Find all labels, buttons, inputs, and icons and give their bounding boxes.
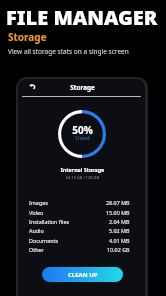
button[interactable]: Documents: [29, 237, 130, 246]
staticText: 10.02 GB: [107, 246, 130, 253]
staticText: 64.16 GB / 128 GB: [19, 175, 146, 180]
staticText: 5.02 MB: [109, 227, 130, 234]
staticText: 2.04 MB: [109, 218, 130, 225]
button[interactable]: Images: [29, 199, 130, 208]
staticText: 50%: [19, 123, 146, 137]
button[interactable]: CLEAN UP: [42, 267, 123, 282]
staticText: Storage: [19, 83, 146, 92]
staticText: Documents: [29, 237, 59, 244]
staticText: Video: [29, 209, 44, 216]
staticText: Audio: [29, 227, 44, 234]
staticText: 15.00 MB: [106, 209, 130, 216]
staticText: Installation files: [29, 218, 70, 225]
staticText: Storage: [8, 30, 47, 44]
staticText: 28.07 MB: [106, 199, 130, 206]
button[interactable]: Video: [29, 209, 130, 218]
staticText: View all storage stats on a single scree…: [8, 47, 129, 56]
staticText: Images: [29, 199, 48, 206]
staticText: 4.01 MB: [109, 237, 130, 244]
button[interactable]: Back: [25, 79, 39, 93]
staticText: Other: [29, 246, 44, 253]
staticText: Internal Storage: [19, 166, 146, 173]
staticText: Used: [19, 134, 146, 142]
staticText: FILE MANAGER: [6, 4, 158, 31]
staticText: CLEAN UP: [68, 271, 98, 279]
button[interactable]: Other: [29, 246, 130, 255]
button[interactable]: Installation files: [29, 218, 130, 227]
button[interactable]: Audio: [29, 227, 130, 236]
